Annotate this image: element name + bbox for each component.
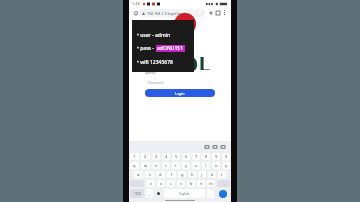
button[interactable]: w [141, 162, 150, 169]
staticText: j [201, 172, 203, 177]
staticText: admin [145, 70, 156, 75]
staticText: q [133, 163, 136, 168]
staticText: English [179, 192, 190, 196]
staticText: y [185, 163, 188, 168]
button[interactable]: More options [221, 9, 228, 16]
button[interactable]: o [212, 162, 220, 169]
button[interactable]: ?123 [130, 189, 144, 198]
staticText: g [181, 172, 184, 177]
button[interactable]: 3 [152, 153, 160, 160]
button[interactable]: y [182, 162, 190, 169]
staticText: f [171, 172, 173, 177]
button[interactable]: v [177, 180, 185, 187]
staticText: OL [181, 48, 211, 78]
button[interactable]: d [156, 171, 165, 178]
button[interactable]: 1 [130, 153, 139, 160]
button[interactable]: . [207, 189, 214, 198]
button[interactable]: Tabs [214, 9, 221, 16]
button[interactable]: 7 [192, 153, 200, 160]
button[interactable]: r [162, 162, 170, 169]
staticText: p [225, 163, 228, 168]
staticText: ?123 [134, 192, 141, 196]
staticText: 0 [225, 154, 228, 159]
staticText: b [190, 181, 193, 186]
staticText: • user - admin [137, 32, 171, 39]
button[interactable]: a [134, 171, 143, 178]
button[interactable]: English [164, 189, 205, 198]
button[interactable]: Login [145, 89, 215, 97]
staticText: 7 [195, 154, 198, 159]
button[interactable]: l [218, 171, 226, 178]
staticText: Login [175, 91, 185, 96]
button[interactable]: i [202, 162, 210, 169]
button[interactable]: 8 [202, 153, 210, 160]
staticText: • wifi 12345678 [137, 59, 173, 66]
staticText: s [149, 172, 151, 177]
staticText: i [205, 163, 207, 168]
button[interactable]: f [167, 171, 176, 178]
staticText: , [149, 191, 151, 196]
staticText: r [165, 163, 167, 168]
button[interactable]: n [197, 180, 205, 187]
button[interactable]: 192.168.1.1/login.html [139, 9, 205, 17]
button[interactable]: Change language [155, 189, 162, 198]
button[interactable]: 9 [212, 153, 220, 160]
button[interactable]: 2 [141, 153, 150, 160]
button[interactable]: x [157, 180, 165, 187]
button[interactable]: 6 [182, 153, 190, 160]
button[interactable]: k [208, 171, 216, 178]
button[interactable]: p [222, 162, 230, 169]
staticText: l [221, 172, 223, 177]
staticText: d [159, 172, 162, 177]
button[interactable]: Voice input [219, 143, 227, 151]
staticText: . [210, 191, 212, 196]
staticText: • pass - [137, 45, 156, 52]
button[interactable]: New tab [207, 9, 214, 16]
button[interactable]: h [188, 171, 196, 178]
staticText: 2 [144, 154, 147, 159]
staticText: a [137, 172, 140, 177]
staticText: w [144, 163, 148, 168]
button[interactable]: Enter [219, 190, 227, 198]
button[interactable]: 4 [162, 153, 170, 160]
staticText: e [155, 163, 158, 168]
button[interactable]: u [192, 162, 200, 169]
button[interactable]: Clipboard [203, 143, 211, 151]
staticText: 9 [215, 154, 218, 159]
button[interactable]: , [146, 189, 153, 198]
staticText: c [170, 181, 172, 186]
staticText: o [215, 163, 218, 168]
button[interactable]: q [130, 162, 139, 169]
staticText: k [211, 172, 214, 177]
staticText: u [195, 163, 198, 168]
button[interactable]: e [152, 162, 160, 169]
button[interactable]: Home [132, 9, 139, 16]
button[interactable]: t [172, 162, 180, 169]
staticText: 3 [155, 154, 158, 159]
staticText: 8 [205, 154, 208, 159]
staticText: h [191, 172, 194, 177]
button[interactable]: j [198, 171, 206, 178]
button[interactable]: 5 [172, 153, 180, 160]
button[interactable]: 0 [222, 153, 230, 160]
staticText: m [209, 181, 213, 186]
staticText: n [200, 181, 203, 186]
button[interactable]: m [207, 180, 215, 187]
staticText: z [150, 181, 152, 186]
staticText: t [175, 163, 177, 168]
button[interactable]: Translate [211, 143, 219, 151]
button[interactable]: b [187, 180, 195, 187]
staticText: 1 [133, 154, 136, 159]
button[interactable]: Password [145, 78, 215, 86]
button[interactable]: s [145, 171, 154, 178]
staticText: 1:46 [132, 1, 140, 6]
staticText: Password [148, 80, 164, 85]
staticText: 5 [175, 154, 178, 159]
button[interactable]: c [167, 180, 175, 187]
staticText: x [160, 181, 163, 186]
staticText: 4 [165, 154, 168, 159]
button[interactable]: z [146, 180, 155, 187]
button[interactable]: g [178, 171, 186, 178]
